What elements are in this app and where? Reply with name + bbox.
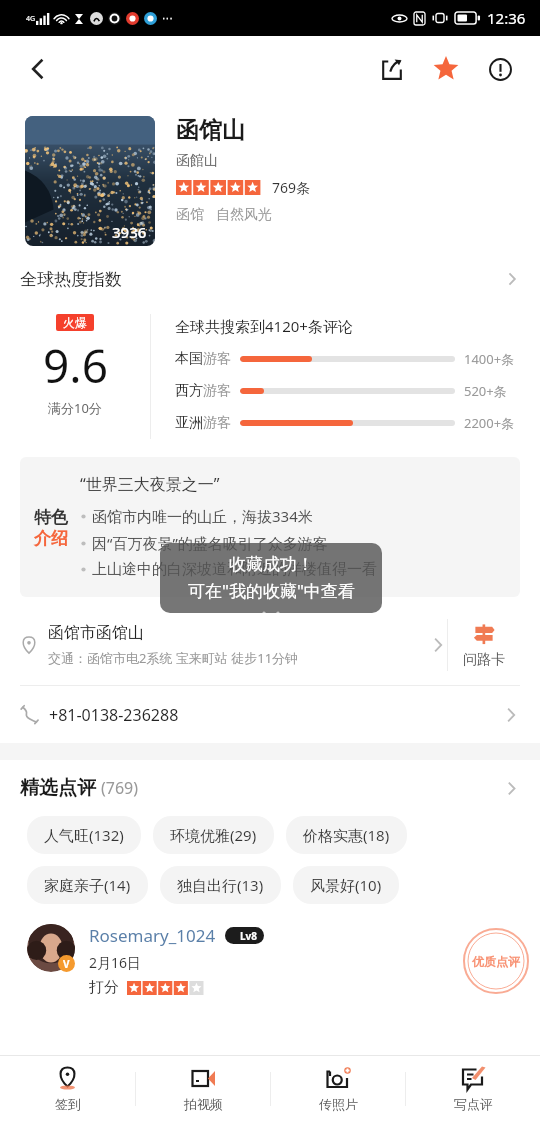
staticText: 12:36 [487,8,526,28]
staticText: 环境优雅(29) [170,825,257,845]
button[interactable]: 写点评 [406,1056,540,1122]
staticText: 亚洲 [175,414,203,432]
staticText: 交通：函馆市电2系统 宝来町站 徒步11分钟 [48,649,299,667]
staticText: V [63,957,70,971]
button[interactable]: Back [14,45,62,93]
staticText: 精选点评 [20,776,96,800]
staticText: 签到 [55,1096,81,1112]
staticText: ⋯ [162,12,173,25]
staticText: 风景好(10) [310,875,382,895]
staticText: 因“百万夜景”的盛名吸引了众多游客 [92,533,328,553]
button[interactable]: +81-0138-236288 [20,686,520,743]
staticText: (769) [101,777,139,799]
staticText: 优质点评 [472,954,520,969]
staticText: 家庭亲子(14) [44,875,131,895]
staticText: 4G [26,14,36,24]
staticText: 传照片 [319,1096,358,1112]
staticText: 全球共搜索到4120+条评论 [175,316,353,336]
staticText: 769条 [272,178,311,197]
staticText: 介绍 [34,528,68,549]
button[interactable]: 价格实惠(18) [286,816,407,854]
button[interactable]: Favorite [424,47,468,91]
button[interactable]: 签到 [0,1056,135,1122]
staticText: 函馆市函馆山 [48,623,144,643]
staticText: 9.6 [43,334,108,397]
staticText: Rosemary_1024 [89,924,216,947]
staticText: 2月16日 [89,953,142,972]
button[interactable]: 3936 [25,116,155,246]
button[interactable]: 特色 [20,457,520,597]
staticText: 收藏成功！ [229,554,314,575]
staticText: 函馆山 [176,116,245,145]
staticText: 特色 [34,507,68,528]
staticText: 独自出行(13) [177,875,264,895]
staticText: 本国 [175,350,203,368]
staticText: 写点评 [454,1096,493,1112]
staticText: 函馆 [176,206,204,224]
button[interactable]: Report [478,47,522,91]
staticText: 上山途中的白深坡道和附近的洋楼值得一看 [92,560,377,579]
staticText: 满分10分 [48,399,102,417]
staticText: 1400+条 [464,350,515,368]
button[interactable]: 问路卡 [448,605,520,685]
button[interactable]: Share [370,47,414,91]
staticText: 2200+条 [464,414,515,432]
staticText: 全球热度指数 [20,269,122,290]
staticText: 自然风光 [216,206,272,224]
button[interactable]: 独自出行(13) [160,866,281,904]
button[interactable]: 环境优雅(29) [153,816,274,854]
staticText: 游客 [203,382,231,400]
button[interactable]: 精选点评 [0,760,540,816]
button[interactable]: 传照片 [271,1056,405,1122]
staticText: Lv8 [240,929,258,943]
staticText: +81-0138-236288 [49,704,179,726]
button[interactable]: 全球热度指数 [0,254,540,304]
staticText: 西方 [175,382,203,400]
staticText: 游客 [203,414,231,432]
staticText: 人气旺(132) [44,825,124,845]
staticText: 函馆市内唯一的山丘，海拔334米 [92,506,313,526]
staticText: “世界三大夜景之一” [80,473,220,495]
staticText: 拍视频 [184,1096,223,1112]
staticText: 火爆 [63,315,87,330]
staticText: 问路卡 [463,651,505,669]
button[interactable]: 函馆市函馆山 [20,605,447,685]
button[interactable]: 风景好(10) [293,866,399,904]
staticText: 可在"我的收藏"中查看 [188,579,355,602]
staticText: 打分 [89,978,119,997]
button[interactable]: 家庭亲子(14) [27,866,148,904]
staticText: 价格实惠(18) [303,825,390,845]
button[interactable]: 拍视频 [136,1056,270,1122]
staticText: 函館山 [176,152,218,170]
button[interactable]: 人气旺(132) [27,816,141,854]
staticText: 游客 [203,350,231,368]
staticText: 3936 [112,222,147,242]
staticText: 520+条 [464,382,507,400]
